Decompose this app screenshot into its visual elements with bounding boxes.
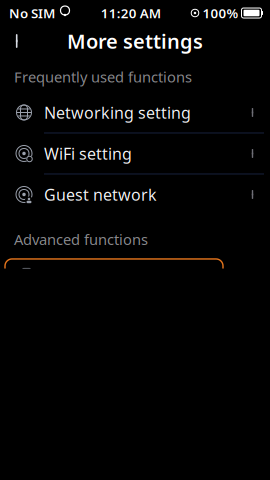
button[interactable]: Networking setting	[0, 92, 270, 133]
staticText: Advanced functions	[14, 229, 148, 249]
staticText: 11:20 AM	[101, 4, 161, 22]
staticText: Guest network	[44, 184, 157, 205]
staticText: WiFi setting	[44, 143, 132, 164]
staticText: Frequently used functions	[14, 67, 192, 86]
staticText: Networking setting	[44, 102, 191, 123]
button[interactable]: Guest network	[0, 174, 270, 215]
staticText: No SIM	[9, 4, 55, 22]
button[interactable]: WiFi setting	[0, 133, 270, 174]
staticText: 100%	[202, 4, 238, 22]
staticText: More settings	[67, 28, 203, 54]
button[interactable]: Add a secondary node	[0, 255, 270, 296]
button[interactable]: Back	[3, 25, 33, 57]
